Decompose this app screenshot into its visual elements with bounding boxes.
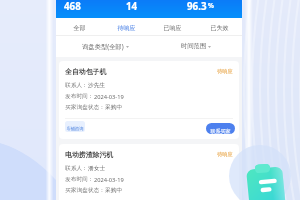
staticText: 待响应 <box>217 68 233 75</box>
staticText: 时间范围 <box>181 42 207 50</box>
staticText: 买家询盘状态： <box>65 104 105 111</box>
staticText: 买家询盘状态： <box>65 187 105 194</box>
staticText: 96.3 <box>187 0 207 13</box>
button[interactable]: 14 <box>126 0 186 18</box>
button[interactable]: 询盘类型(全部) <box>82 35 132 56</box>
staticText: 待响应 <box>217 151 233 158</box>
button[interactable]: 96.3 <box>187 0 247 18</box>
button[interactable]: 全自动包子机 <box>59 61 239 139</box>
button[interactable]: 电动捞渣除污机 <box>59 144 239 200</box>
other: Inquiry illustration <box>0 0 300 200</box>
staticText: 发布时间： <box>65 93 94 100</box>
staticText: 已失效 <box>196 24 243 32</box>
staticText: 店铺咨询 <box>65 126 85 131</box>
button[interactable]: 店铺咨询 <box>65 121 85 132</box>
staticText: 电动捞渣除污机 <box>65 150 114 159</box>
staticText: 发布时间： <box>65 176 94 183</box>
staticText: 联系人： <box>65 82 88 89</box>
staticText: 询盘类型(全部) <box>82 42 124 51</box>
button[interactable]: 已失效 <box>196 18 243 35</box>
staticText: 2024-03-19 <box>94 93 124 101</box>
button[interactable]: 已响应 <box>149 18 196 35</box>
staticText: 全自动包子机 <box>65 67 107 76</box>
button[interactable]: 全部 <box>56 18 103 35</box>
button[interactable]: 待响应 <box>103 18 150 35</box>
staticText: 采购中 <box>105 104 123 111</box>
staticText: 14 <box>126 0 138 13</box>
staticText: 已响应 <box>149 24 196 32</box>
button[interactable]: 联系买家 <box>206 123 235 134</box>
staticText: 联系买家 <box>206 128 235 134</box>
staticText: 2024-03-19 <box>94 176 124 184</box>
staticText: % <box>208 1 214 10</box>
staticText: 468 <box>64 0 81 13</box>
staticText: 全部 <box>56 24 103 32</box>
staticText: 潘女士 <box>88 165 106 172</box>
staticText: 联系人： <box>65 165 88 172</box>
staticText: 采购中 <box>105 187 123 194</box>
staticText: 待响应 <box>103 24 150 32</box>
button[interactable]: 468 <box>64 0 124 18</box>
staticText: 沙先生 <box>88 82 106 89</box>
button[interactable]: 时间范围 <box>181 35 214 56</box>
